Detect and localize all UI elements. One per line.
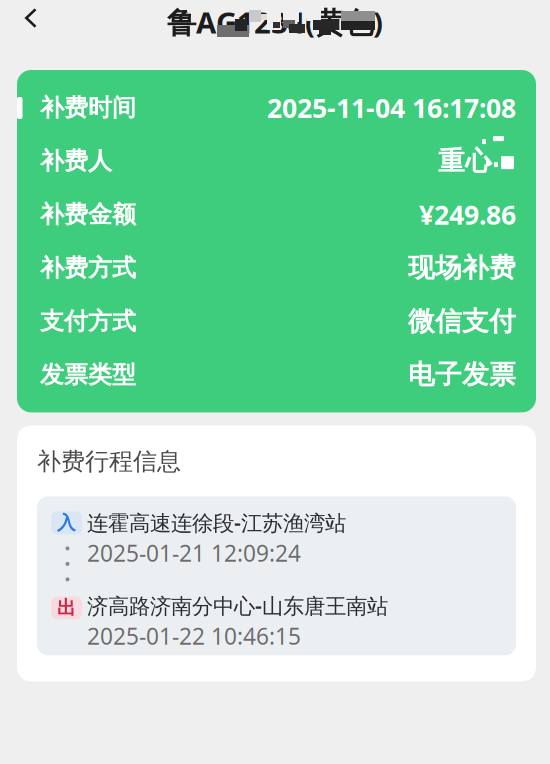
staticText: 补费行程信息 [37, 447, 181, 476]
staticText: 发票类型 [40, 360, 136, 389]
staticText: 补费时间 [40, 93, 136, 122]
staticText: 2025-11-04 16:17:08 [267, 90, 516, 125]
button[interactable]: Back [0, 2, 52, 42]
staticText: 微信支付 [408, 305, 516, 338]
staticText: 出 [57, 596, 76, 619]
staticText: 济高路济南分中心-山东唐王南站 [87, 591, 388, 619]
staticText: 2025-01-22 10:46:15 [87, 621, 301, 651]
staticText: 补费人 [40, 146, 112, 176]
staticText: 电子发票 [408, 358, 516, 391]
staticText: 2025-01-21 12:09:24 [87, 538, 301, 568]
staticText: 重心 [438, 145, 492, 177]
staticText: ¥249.86 [419, 197, 516, 232]
staticText: 补费金额 [40, 200, 136, 229]
staticText: 连霍高速连徐段-江苏渔湾站 [87, 508, 346, 536]
staticText: 鲁AG1234(黄色) [167, 2, 383, 41]
staticText: 补费方式 [40, 253, 136, 283]
staticText: 入 [57, 511, 76, 534]
staticText: 支付方式 [40, 307, 136, 336]
staticText: 现场补费 [408, 251, 516, 284]
